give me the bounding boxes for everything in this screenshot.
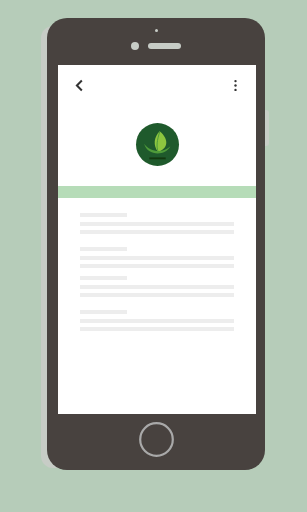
- button[interactable]: More options: [219, 69, 251, 101]
- button[interactable]: Back: [63, 69, 95, 101]
